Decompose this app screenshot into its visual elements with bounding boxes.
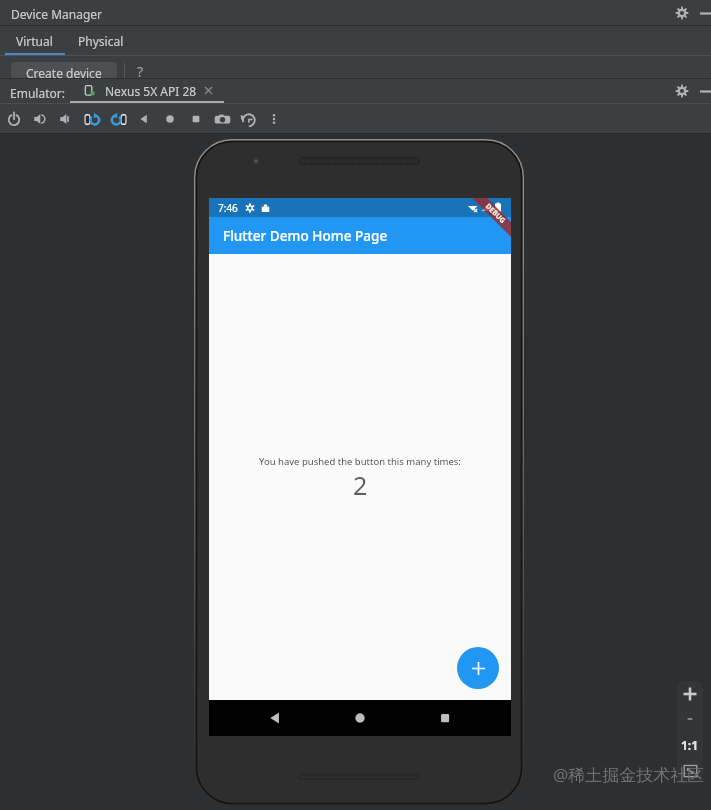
button[interactable]: Volume down [53, 106, 79, 132]
staticText: You have pushed the button this many tim… [259, 455, 461, 468]
button[interactable]: Overview [183, 106, 209, 132]
button[interactable]: Zoom out [677, 707, 703, 731]
button[interactable]: Recents [428, 701, 462, 735]
button[interactable]: Hide emulator [695, 80, 711, 102]
button[interactable]: Power [1, 106, 27, 132]
button[interactable]: Zoom in [677, 681, 703, 707]
button[interactable]: Rotate left [79, 106, 105, 132]
staticText: Virtual [16, 33, 53, 49]
button[interactable]: Emulator settings [671, 80, 693, 102]
staticText: 7:46 [218, 201, 238, 215]
staticText: Flutter Demo Home Page [223, 226, 388, 245]
staticText: Device Manager [11, 6, 102, 22]
staticText: ? [137, 62, 144, 81]
staticText: Create device [26, 65, 102, 81]
staticText: 1:1 [681, 737, 699, 753]
button[interactable]: Rotate right [105, 106, 131, 132]
staticText: Emulator: [10, 85, 65, 101]
button[interactable]: Nexus 5X API 28 [70, 79, 224, 102]
button[interactable]: Home [157, 106, 183, 132]
button[interactable]: Back [258, 701, 292, 735]
staticText: 2 [353, 468, 368, 502]
staticText: Nexus 5X API 28 [105, 83, 197, 99]
staticText: DEBUG [483, 202, 508, 226]
button[interactable]: Help [130, 61, 150, 81]
staticText: Physical [78, 33, 124, 49]
button[interactable]: Back [131, 106, 157, 132]
button[interactable]: Home [343, 701, 377, 735]
button[interactable]: Fit to screen [677, 759, 703, 783]
button[interactable]: Settings [671, 2, 693, 24]
button[interactable]: Create device [11, 62, 117, 83]
button[interactable]: Screenshot [209, 106, 235, 132]
button[interactable]: Actual size [677, 732, 703, 758]
staticText: @稀土掘金技术社区 [553, 763, 705, 786]
button[interactable]: More [261, 106, 287, 132]
button[interactable]: Physical [70, 28, 132, 53]
button[interactable]: Increment [457, 647, 499, 689]
button[interactable]: Hide [695, 2, 711, 24]
button[interactable]: Virtual [6, 28, 62, 53]
button[interactable]: Volume up [27, 106, 53, 132]
button[interactable]: Restore [235, 106, 261, 132]
